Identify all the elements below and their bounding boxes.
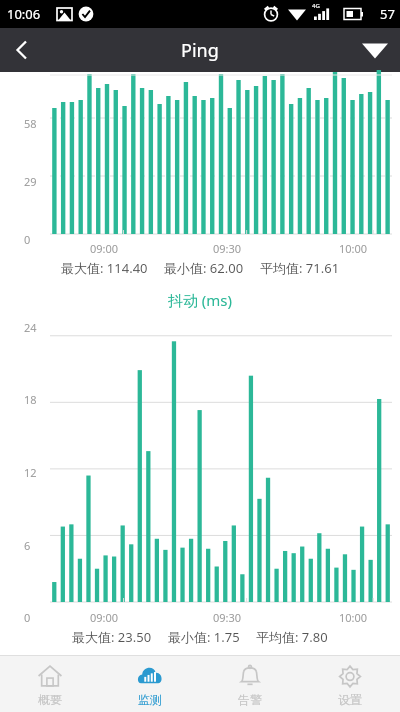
staticText: 概要	[38, 692, 62, 707]
button[interactable]: Expand options	[350, 28, 400, 72]
staticText: 6	[24, 538, 31, 553]
staticText: 平均值: 71.61	[260, 259, 340, 277]
staticText: 最大值: 114.40	[61, 259, 148, 277]
staticText: 09:00	[90, 610, 119, 625]
staticText: 0	[24, 232, 31, 247]
staticText: 24	[24, 320, 37, 335]
button[interactable]: 告警	[200, 656, 300, 712]
staticText: 12	[24, 465, 37, 480]
staticText: 10:00	[339, 241, 368, 256]
staticText: 监测	[138, 692, 162, 707]
staticText: 09:00	[90, 241, 119, 256]
staticText: 4G	[312, 2, 320, 10]
staticText: 58	[24, 116, 37, 131]
staticText: 告警	[238, 692, 262, 707]
button[interactable]: 监测	[100, 656, 200, 712]
staticText: 0	[24, 610, 31, 625]
staticText: 平均值: 7.80	[256, 628, 328, 646]
staticText: 最小值: 1.75	[168, 628, 240, 646]
staticText: 10:06	[7, 5, 41, 23]
staticText: 设置	[338, 692, 362, 707]
staticText: 最大值: 23.50	[72, 628, 152, 646]
staticText: 29	[24, 174, 37, 189]
button[interactable]: 设置	[300, 656, 400, 712]
staticText: 09:30	[213, 241, 242, 256]
staticText: 18	[24, 392, 37, 407]
button[interactable]: Back	[0, 28, 48, 72]
staticText: 57	[380, 5, 395, 23]
staticText: 抖动 (ms)	[0, 290, 400, 310]
button[interactable]: 概要	[0, 656, 100, 712]
staticText: 09:30	[213, 610, 242, 625]
staticText: 10:00	[339, 610, 368, 625]
staticText: 最小值: 62.00	[164, 259, 244, 277]
staticText: Ping	[181, 38, 219, 63]
